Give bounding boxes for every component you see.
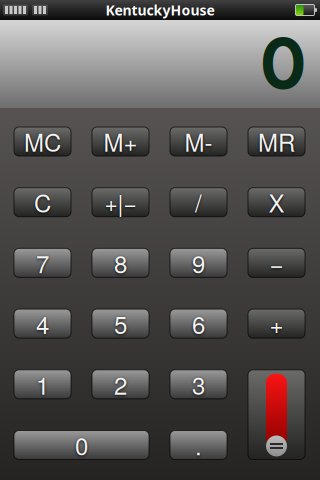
button[interactable]: −: [248, 248, 305, 277]
button[interactable]: 8: [92, 248, 149, 277]
button[interactable]: M-: [170, 127, 227, 156]
button[interactable]: 6: [170, 309, 227, 338]
button[interactable]: +: [248, 309, 305, 338]
staticText: 0: [260, 12, 306, 116]
button[interactable]: MR: [248, 127, 305, 156]
staticText: KentuckyHouse: [105, 0, 214, 20]
button[interactable]: C: [14, 188, 71, 217]
staticText: 3: [192, 367, 205, 401]
staticText: 1: [36, 367, 49, 401]
staticText: −: [269, 246, 283, 280]
staticText: M-: [184, 124, 212, 159]
staticText: C: [34, 185, 51, 219]
staticText: 5: [114, 306, 127, 341]
button[interactable]: X: [248, 188, 305, 217]
staticText: 9: [192, 246, 205, 280]
button[interactable]: /: [170, 188, 227, 217]
staticText: +: [269, 306, 283, 341]
staticText: M+: [103, 124, 137, 159]
button[interactable]: 1: [14, 370, 71, 399]
staticText: X: [268, 185, 284, 219]
button[interactable]: 0: [14, 430, 149, 459]
button[interactable]: 2: [92, 370, 149, 399]
button[interactable]: 7: [14, 248, 71, 277]
staticText: 0: [75, 428, 88, 462]
staticText: +|−: [104, 186, 136, 218]
button[interactable]: Equals: [248, 370, 305, 459]
staticText: /: [195, 185, 202, 219]
button[interactable]: +|−: [92, 188, 149, 217]
staticText: MC: [24, 124, 61, 159]
staticText: 7: [36, 246, 49, 280]
staticText: 8: [114, 246, 127, 280]
button[interactable]: 4: [14, 309, 71, 338]
staticText: 2: [114, 367, 127, 401]
staticText: .: [195, 428, 202, 462]
button[interactable]: 3: [170, 370, 227, 399]
button[interactable]: 5: [92, 309, 149, 338]
staticText: 6: [192, 306, 205, 341]
button[interactable]: M+: [92, 127, 149, 156]
staticText: MR: [258, 124, 295, 159]
button[interactable]: .: [170, 430, 227, 459]
button[interactable]: 9: [170, 248, 227, 277]
button[interactable]: MC: [14, 127, 71, 156]
staticText: 4: [36, 306, 49, 341]
